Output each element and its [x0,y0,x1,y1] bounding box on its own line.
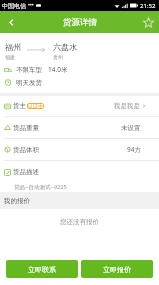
staticText: 明天发货 [16,79,42,87]
staticText: 立即报价 [103,265,131,274]
button[interactable]: 收藏 [137,11,159,33]
button[interactable]: 立即报价 [81,260,153,278]
button[interactable]: 返回 [0,11,22,33]
staticText: 六盘水 [53,42,77,52]
staticText: 贵州 [53,54,63,60]
staticText: 货品描述 [13,168,39,176]
staticText: ••• [28,2,34,9]
staticText: 14.0米 [48,65,68,74]
staticText: 福建 [5,54,15,60]
staticText: 94方 [127,145,141,154]
staticText: 立即联系 [28,265,56,274]
staticText: 我是我是 [114,102,140,110]
staticText: 货主 [13,102,26,110]
staticText: 认证中 [28,103,43,109]
staticText: 未设置 [121,124,141,132]
staticText: 货品重量 [13,124,39,132]
staticText: 21:52 [140,2,156,10]
staticText: 货品--自动测试--9225 [14,183,67,191]
staticText: 货源详情 [63,17,97,28]
staticText: 您还没有报价 [60,218,99,226]
staticText: 货品体积 [13,146,39,154]
button[interactable]: 立即联系 [6,260,78,278]
button[interactable]: 货主 [0,96,159,116]
staticText: 中国电信 [2,2,26,10]
staticText: 我的报价 [4,197,30,205]
staticText: 不限车型 [16,66,42,74]
staticText: 福州 [5,42,21,52]
